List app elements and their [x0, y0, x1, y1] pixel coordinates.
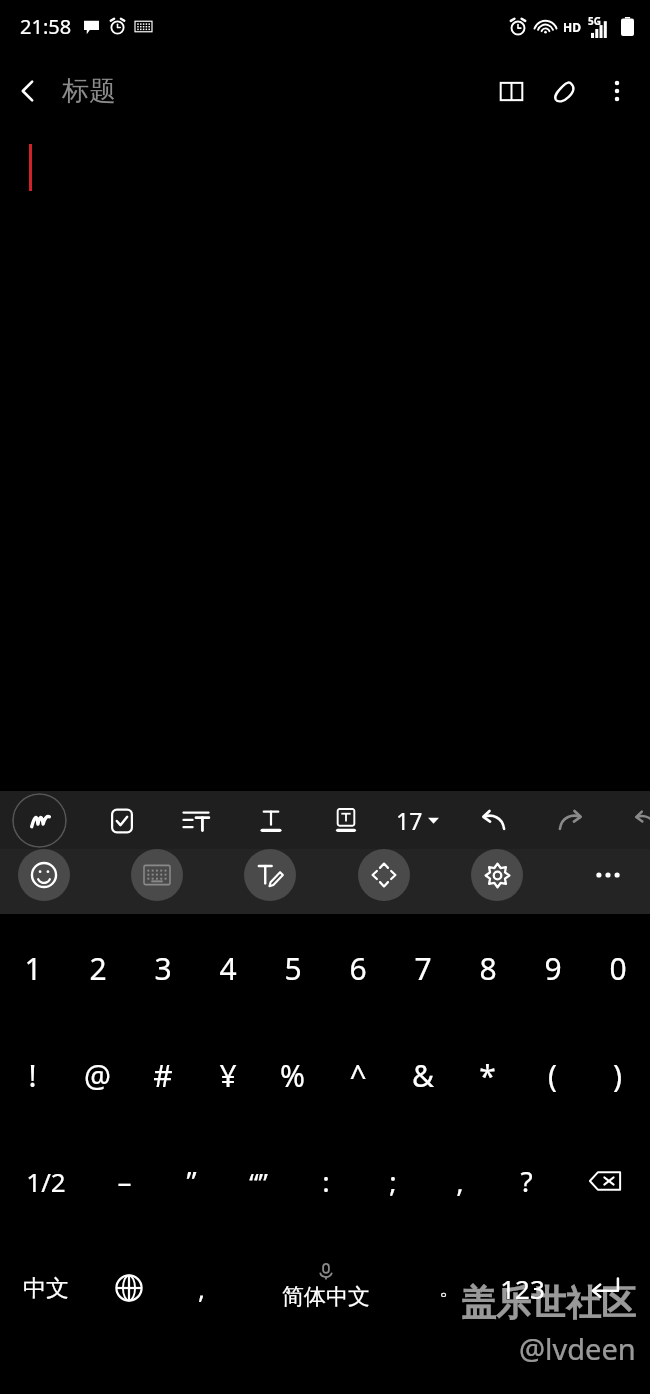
- staticText: ): [613, 1055, 622, 1096]
- button[interactable]: ¥: [195, 1022, 260, 1128]
- button[interactable]: Attach: [538, 64, 592, 118]
- button[interactable]: Enter: [559, 1234, 650, 1342]
- button[interactable]: More options: [592, 66, 642, 116]
- staticText: 3: [154, 948, 172, 989]
- button[interactable]: 9: [520, 914, 585, 1022]
- button[interactable]: ): [585, 1022, 650, 1128]
- staticText: ,: [456, 1162, 464, 1200]
- button[interactable]: Backspace: [560, 1128, 650, 1234]
- staticText: 1: [24, 948, 42, 989]
- staticText: 1/2: [26, 1164, 66, 1199]
- staticText: ;: [389, 1162, 397, 1200]
- staticText: 2: [89, 948, 107, 989]
- staticText: *: [479, 1055, 496, 1096]
- button[interactable]: More: [584, 851, 632, 899]
- staticText: @: [84, 1055, 111, 1096]
- staticText: %: [280, 1055, 305, 1096]
- staticText: 0: [609, 948, 627, 989]
- button[interactable]: Text box: [322, 797, 370, 845]
- staticText: 9: [544, 948, 562, 989]
- button[interactable]: &: [390, 1022, 455, 1128]
- button[interactable]: Handwriting input: [244, 849, 296, 901]
- button[interactable]: Change language: [92, 1234, 165, 1342]
- staticText: (: [548, 1055, 557, 1096]
- button[interactable]: Text style: [247, 797, 295, 845]
- button[interactable]: Keyboard: [131, 849, 183, 901]
- staticText: ”: [186, 1162, 197, 1200]
- button[interactable]: 中文: [0, 1234, 92, 1342]
- button[interactable]: 。: [413, 1234, 486, 1342]
- button[interactable]: 123: [486, 1234, 559, 1342]
- staticText: :: [322, 1162, 330, 1200]
- button[interactable]: 3: [130, 914, 195, 1022]
- staticText: ^: [349, 1055, 367, 1096]
- button[interactable]: (: [520, 1022, 585, 1128]
- button[interactable]: !: [0, 1022, 65, 1128]
- button[interactable]: More: [622, 797, 650, 845]
- button[interactable]: ?: [493, 1128, 560, 1234]
- button[interactable]: Redo: [546, 797, 594, 845]
- staticText: #: [153, 1055, 173, 1096]
- button[interactable]: ;: [359, 1128, 426, 1234]
- button[interactable]: %: [260, 1022, 325, 1128]
- staticText: 5G: [588, 14, 601, 28]
- staticText: 8: [479, 948, 497, 989]
- button[interactable]: Back: [0, 63, 56, 119]
- button[interactable]: 1/2: [0, 1128, 91, 1234]
- staticText: 盖乐世社区: [461, 1281, 636, 1325]
- button[interactable]: 4: [195, 914, 260, 1022]
- button[interactable]: Space: [238, 1234, 413, 1342]
- staticText: 17: [396, 805, 423, 836]
- button[interactable]: 标题: [62, 74, 116, 108]
- button[interactable]: *: [455, 1022, 520, 1128]
- button[interactable]: Undo: [470, 797, 518, 845]
- button[interactable]: @: [65, 1022, 130, 1128]
- staticText: !: [28, 1055, 37, 1096]
- button[interactable]: #: [130, 1022, 195, 1128]
- button[interactable]: 8: [455, 914, 520, 1022]
- staticText: 7: [414, 948, 432, 989]
- button[interactable]: “”: [225, 1128, 292, 1234]
- staticText: 中文: [23, 1274, 69, 1303]
- staticText: HD: [563, 19, 581, 35]
- button[interactable]: Checklist: [98, 797, 146, 845]
- staticText: ¥: [219, 1055, 237, 1096]
- button[interactable]: ,: [165, 1234, 238, 1342]
- button[interactable]: 1: [0, 914, 65, 1022]
- button[interactable]: 6: [325, 914, 390, 1022]
- button[interactable]: ,: [426, 1128, 493, 1234]
- button[interactable]: ”: [158, 1128, 225, 1234]
- button[interactable]: 7: [390, 914, 455, 1022]
- staticText: –: [117, 1162, 132, 1200]
- button[interactable]: 0: [585, 914, 650, 1022]
- button[interactable]: –: [91, 1128, 158, 1234]
- button[interactable]: Paragraph: [172, 797, 220, 845]
- staticText: ?: [520, 1162, 533, 1200]
- staticText: 123: [500, 1271, 545, 1306]
- button[interactable]: Settings: [471, 849, 523, 901]
- button[interactable]: Reading mode: [484, 64, 538, 118]
- staticText: ,: [198, 1271, 205, 1306]
- staticText: 6: [349, 948, 367, 989]
- staticText: “”: [249, 1164, 268, 1199]
- button[interactable]: Handwriting: [12, 793, 67, 848]
- button[interactable]: 17: [396, 805, 439, 836]
- staticText: 。: [439, 1274, 461, 1302]
- staticText: &: [412, 1055, 434, 1096]
- staticText: 5: [284, 948, 302, 989]
- button[interactable]: 2: [65, 914, 130, 1022]
- staticText: 21:58: [20, 13, 72, 40]
- button[interactable]: :: [292, 1128, 359, 1234]
- button[interactable]: Move: [358, 849, 410, 901]
- button[interactable]: Emoji: [18, 849, 70, 901]
- button[interactable]: ^: [325, 1022, 390, 1128]
- staticText: 简体中文: [282, 1283, 370, 1311]
- staticText: @lvdeen: [519, 1329, 636, 1368]
- staticText: 4: [219, 948, 237, 989]
- button[interactable]: 5: [260, 914, 325, 1022]
